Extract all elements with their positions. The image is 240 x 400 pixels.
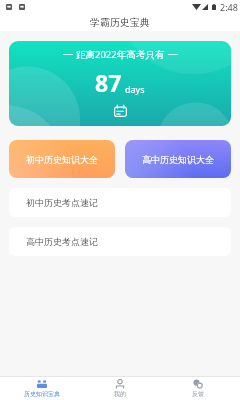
staticText: 初中历史考点速记 bbox=[26, 197, 98, 208]
button[interactable]: 历史知识宝典 bbox=[6, 377, 78, 400]
button[interactable]: 高中历史知识大全 bbox=[125, 140, 231, 178]
staticText: 距离2022年高考只有 bbox=[76, 48, 165, 61]
button[interactable]: 我的 bbox=[84, 377, 156, 400]
button[interactable]: 距离2022年高考只有 bbox=[9, 41, 231, 126]
staticText: days bbox=[125, 83, 145, 95]
staticText: 87 bbox=[95, 67, 122, 98]
staticText: 学霸历史宝典 bbox=[90, 16, 150, 29]
staticText: 高中历史考点速记 bbox=[26, 236, 98, 247]
staticText: 初中历史知识大全 bbox=[26, 154, 98, 165]
staticText: 高中历史知识大全 bbox=[142, 154, 214, 165]
staticText: 我的 bbox=[114, 390, 126, 398]
button[interactable]: 反馈 bbox=[162, 377, 234, 400]
staticText: 2:48 bbox=[220, 1, 238, 13]
button[interactable]: 高中历史考点速记 bbox=[9, 227, 231, 256]
staticText: 反馈 bbox=[192, 390, 204, 398]
button[interactable]: 初中历史知识大全 bbox=[9, 140, 115, 178]
button[interactable]: 初中历史考点速记 bbox=[9, 188, 231, 217]
staticText: 历史知识宝典 bbox=[24, 390, 60, 398]
